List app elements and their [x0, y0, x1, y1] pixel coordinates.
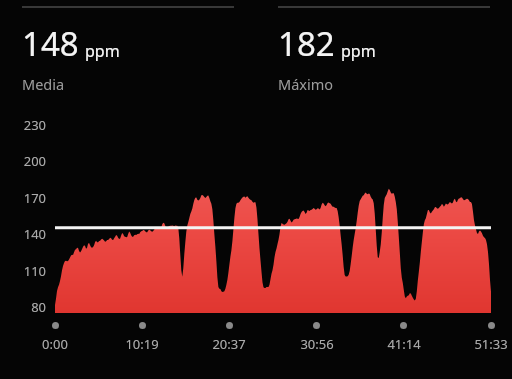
staticText: 0:00 [42, 335, 68, 353]
other: 0:00 [52, 322, 59, 329]
staticText: ppm [341, 40, 376, 62]
button[interactable]: 148 [0, 0, 256, 94]
other: 51:33 [488, 322, 495, 329]
staticText: 10:19 [125, 335, 159, 353]
staticText: 170 [23, 189, 46, 207]
staticText: 30:56 [300, 335, 334, 353]
staticText: 80 [31, 298, 46, 316]
staticText: Media [22, 74, 65, 94]
staticText: 148 [22, 21, 79, 66]
other: 10:19 [139, 322, 146, 329]
staticText: 230 [23, 116, 46, 134]
other: 20:37 [226, 322, 233, 329]
staticText: ppm [85, 40, 120, 62]
button[interactable]: 182 [256, 0, 512, 94]
staticText: 20:37 [212, 335, 246, 353]
other: 41:14 [400, 322, 407, 329]
other: 30:56 [313, 322, 320, 329]
staticText: Máximo [278, 74, 334, 94]
staticText: 41:14 [387, 335, 421, 353]
staticText: 182 [278, 21, 335, 66]
staticText: 110 [23, 262, 46, 280]
staticText: 51:33 [474, 335, 508, 353]
staticText: 140 [23, 225, 46, 243]
staticText: 200 [23, 152, 46, 170]
